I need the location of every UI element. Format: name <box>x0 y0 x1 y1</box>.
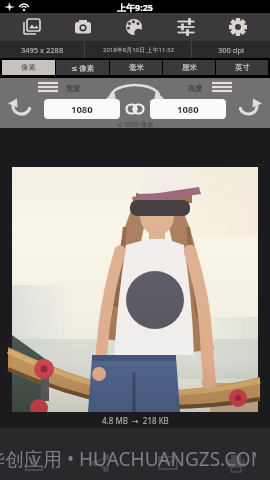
staticText: ≤ 像素 <box>71 63 95 73</box>
staticText: ≤ 8000 像素 <box>117 120 154 129</box>
staticText: 华创应用 • HUACHUANGZS.COM <box>0 446 256 472</box>
staticText: 2018年8月10日 上午11:32 <box>103 46 174 54</box>
button[interactable] <box>6 13 57 41</box>
button[interactable] <box>202 446 270 480</box>
staticText: 上午9:25 <box>117 1 153 13</box>
staticText: 厘米 <box>182 63 197 72</box>
staticText: 英寸 <box>235 63 250 72</box>
button[interactable] <box>57 13 108 41</box>
staticText: 300 dpi <box>218 45 244 55</box>
staticText: 1080 <box>177 103 199 116</box>
button[interactable]: 像素 <box>2 60 55 75</box>
staticText: 毫米 <box>129 63 144 72</box>
button[interactable] <box>134 446 202 480</box>
button[interactable]: ≤ 像素 <box>56 60 109 75</box>
staticText: 3495 x 2288 <box>21 45 64 55</box>
button[interactable]: 1080 <box>150 99 226 119</box>
button[interactable] <box>160 13 212 41</box>
staticText: 宽度 <box>66 84 80 93</box>
button[interactable]: 英寸 <box>216 60 268 75</box>
staticText: 高度 <box>188 84 202 93</box>
staticText: 像素 <box>21 63 36 72</box>
button[interactable]: 厘米 <box>163 60 215 75</box>
staticText: 1080 <box>71 103 93 116</box>
button[interactable] <box>0 446 67 480</box>
button[interactable]: 毫米 <box>110 60 162 75</box>
button[interactable] <box>108 13 160 41</box>
button[interactable] <box>67 446 134 480</box>
button[interactable]: 1080 <box>44 99 120 119</box>
button[interactable] <box>212 13 264 41</box>
staticText: 4.8 MB → 218 KB <box>102 415 169 426</box>
